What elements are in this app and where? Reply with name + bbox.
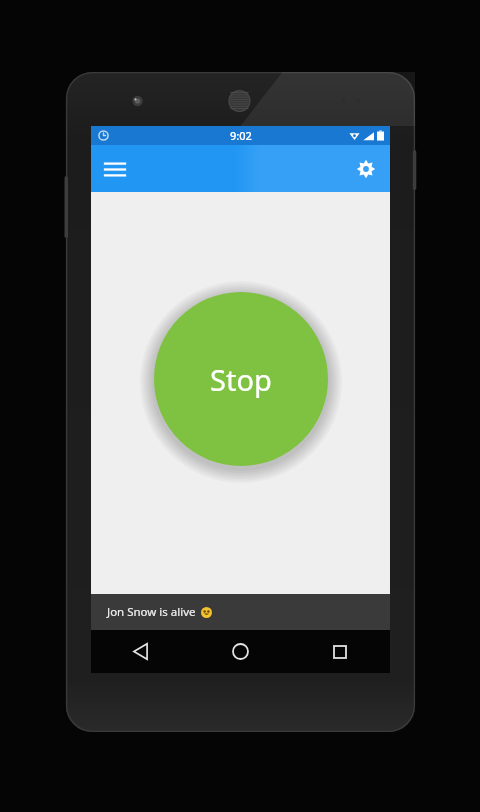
staticText: Stop	[210, 360, 272, 399]
button[interactable]: Back	[91, 630, 190, 673]
staticText: Jon Snow is alive	[107, 604, 196, 620]
button[interactable]: Settings	[346, 149, 386, 189]
button[interactable]: Recent apps	[290, 630, 390, 673]
button[interactable]: Home	[190, 630, 290, 673]
button[interactable]: Stop	[154, 292, 328, 466]
staticText: 9:02	[230, 128, 252, 143]
button[interactable]: Open navigation menu	[95, 149, 135, 189]
